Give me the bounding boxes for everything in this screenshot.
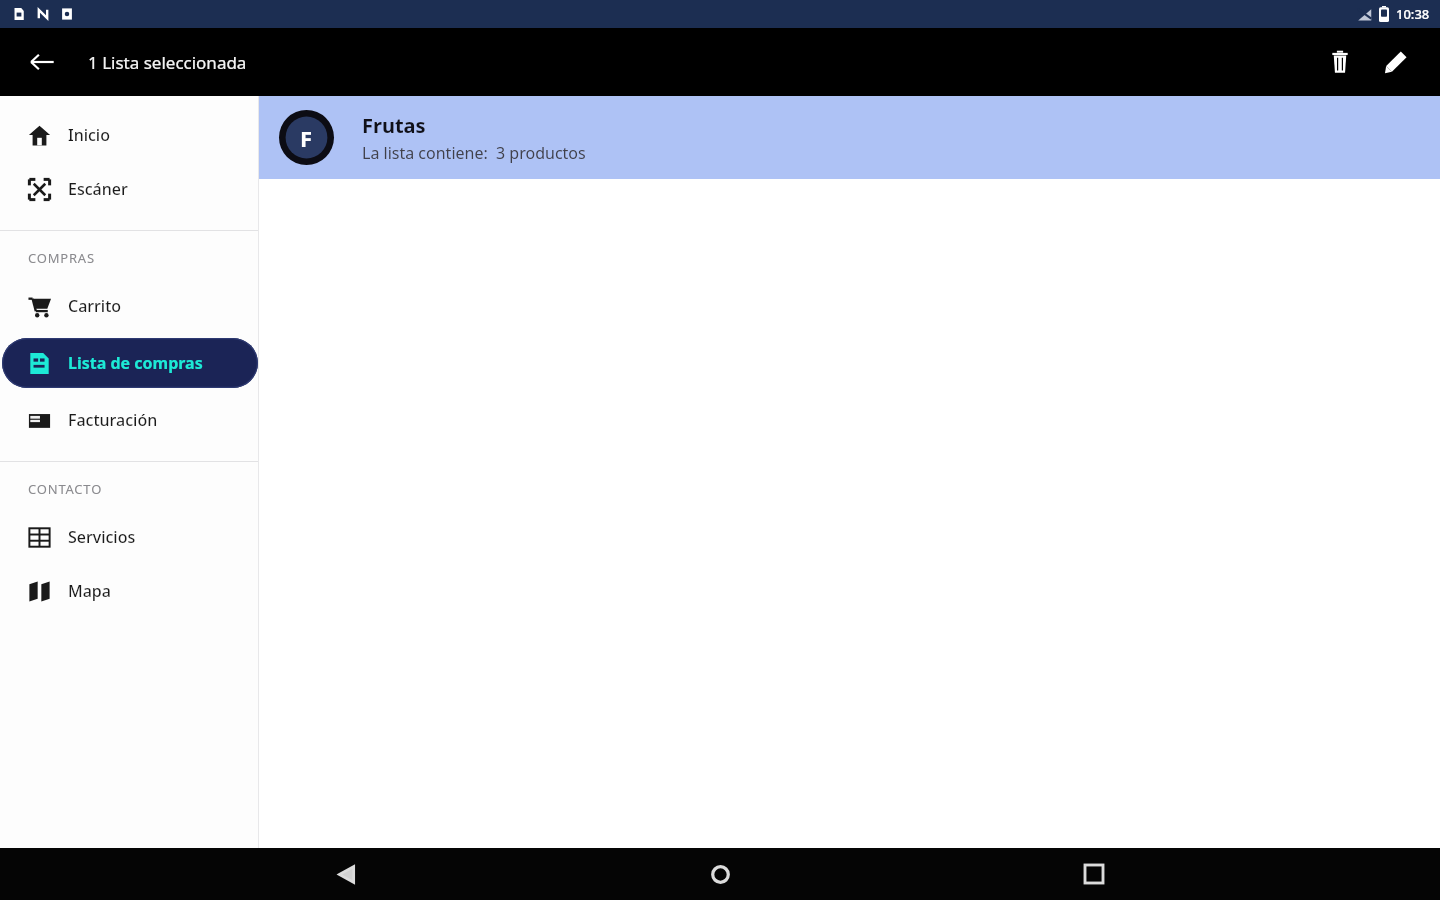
- staticText: Mapa: [68, 580, 111, 602]
- staticText: La lista contiene: 3 productos: [362, 142, 586, 164]
- button[interactable]: Back: [18, 38, 66, 86]
- button[interactable]: Home: [692, 848, 748, 900]
- staticText: COMPRAS: [28, 249, 95, 267]
- button[interactable]: Servicios: [0, 510, 259, 564]
- staticText: 10:38: [1396, 5, 1430, 23]
- staticText: Facturación: [68, 409, 158, 431]
- staticText: Frutas: [362, 112, 426, 139]
- button[interactable]: Facturación: [0, 393, 259, 447]
- button[interactable]: Delete: [1316, 38, 1364, 86]
- staticText: Servicios: [68, 526, 136, 548]
- button[interactable]: Escáner: [0, 162, 259, 216]
- button[interactable]: Inicio: [0, 108, 259, 162]
- staticText: CONTACTO: [28, 480, 103, 498]
- staticText: Inicio: [68, 124, 110, 146]
- button[interactable]: Lista de compras: [2, 338, 258, 388]
- button[interactable]: Mapa: [0, 564, 259, 618]
- staticText: Escáner: [68, 178, 128, 200]
- staticText: F: [300, 123, 313, 153]
- button[interactable]: Edit: [1372, 38, 1420, 86]
- staticText: 1 Lista seleccionada: [88, 51, 247, 74]
- button[interactable]: Carrito: [0, 279, 259, 333]
- button[interactable]: F: [259, 96, 1440, 179]
- button[interactable]: Back: [318, 848, 374, 900]
- button[interactable]: Recents: [1066, 848, 1122, 900]
- staticText: Carrito: [68, 295, 122, 317]
- staticText: Lista de compras: [68, 352, 203, 374]
